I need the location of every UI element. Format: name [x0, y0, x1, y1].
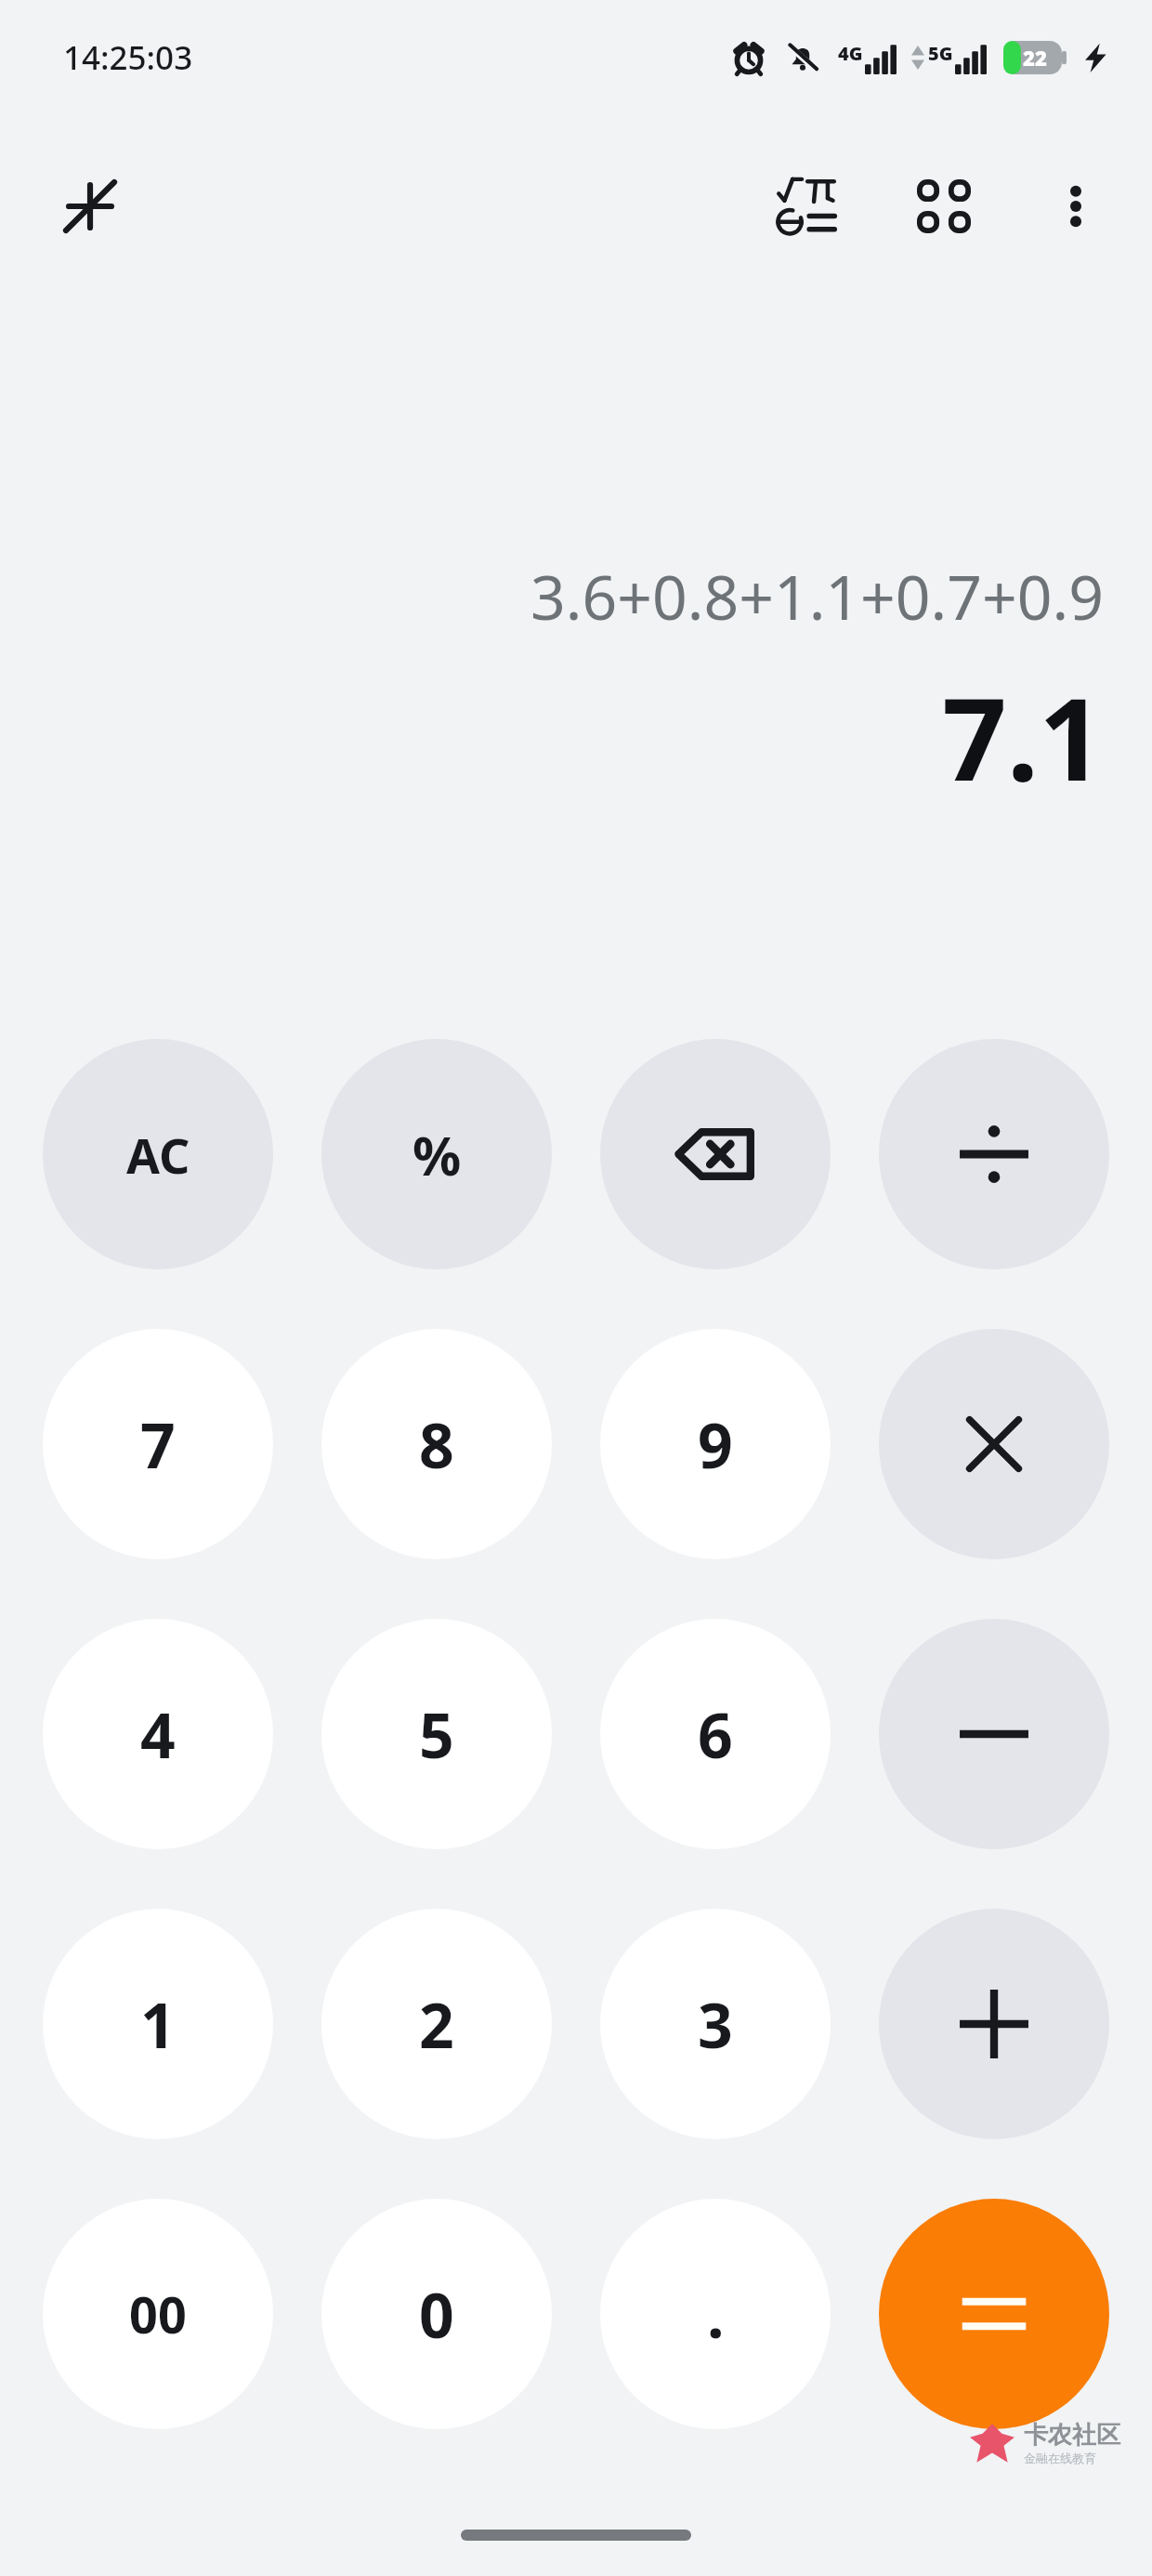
staticText: 卡农社区 [1024, 2420, 1120, 2451]
staticText: 1 [140, 1982, 176, 2066]
staticText: 金融在线教育 [1024, 2451, 1096, 2465]
button[interactable]: Multiply [879, 1329, 1109, 1559]
button[interactable]: Collapse [39, 155, 141, 257]
staticText: 9 [698, 1402, 733, 1486]
button[interactable]: 9 [600, 1329, 831, 1559]
button[interactable]: 1 [43, 1909, 273, 2139]
staticText: 7.1 [942, 660, 1104, 814]
staticText: . [707, 2272, 725, 2356]
button[interactable]: 8 [321, 1329, 552, 1559]
staticText: 14:25:03 [63, 35, 193, 80]
staticText: 5 [419, 1692, 454, 1776]
staticText: 0 [419, 2272, 454, 2356]
button[interactable]: More options [1024, 154, 1128, 258]
button[interactable]: 4 [43, 1619, 273, 1849]
staticText: 5G [928, 41, 953, 66]
button[interactable]: 00 [43, 2199, 273, 2429]
button[interactable]: Equals [879, 2199, 1109, 2429]
staticText: 3.6+0.8+1.1+0.7+0.9 [530, 554, 1104, 637]
button[interactable]: Plus [879, 1909, 1109, 2139]
button[interactable]: Layout grid [892, 154, 996, 258]
button[interactable]: 3 [600, 1909, 831, 2139]
button[interactable]: Scientific mode [754, 154, 858, 258]
staticText: 22 [1023, 44, 1047, 72]
staticText: 4G [838, 41, 863, 66]
staticText: 2 [419, 1982, 454, 2066]
button[interactable]: Divide [879, 1039, 1109, 1269]
staticText: 00 [129, 2280, 187, 2348]
staticText: 8 [419, 1402, 454, 1486]
button[interactable]: 7 [43, 1329, 273, 1559]
staticText: 3 [698, 1982, 733, 2066]
button[interactable]: 0 [321, 2199, 552, 2429]
button[interactable]: % [321, 1039, 552, 1269]
staticText: 4 [140, 1692, 176, 1776]
staticText: AC [126, 1122, 190, 1188]
staticText: % [412, 1118, 462, 1191]
button[interactable]: 2 [321, 1909, 552, 2139]
button[interactable]: Backspace [600, 1039, 831, 1269]
staticText: 6 [698, 1692, 733, 1776]
button[interactable]: 6 [600, 1619, 831, 1849]
button[interactable]: Minus [879, 1619, 1109, 1849]
button[interactable]: 5 [321, 1619, 552, 1849]
button[interactable]: AC [43, 1039, 273, 1269]
button[interactable]: . [600, 2199, 831, 2429]
staticText: 7 [140, 1402, 176, 1486]
